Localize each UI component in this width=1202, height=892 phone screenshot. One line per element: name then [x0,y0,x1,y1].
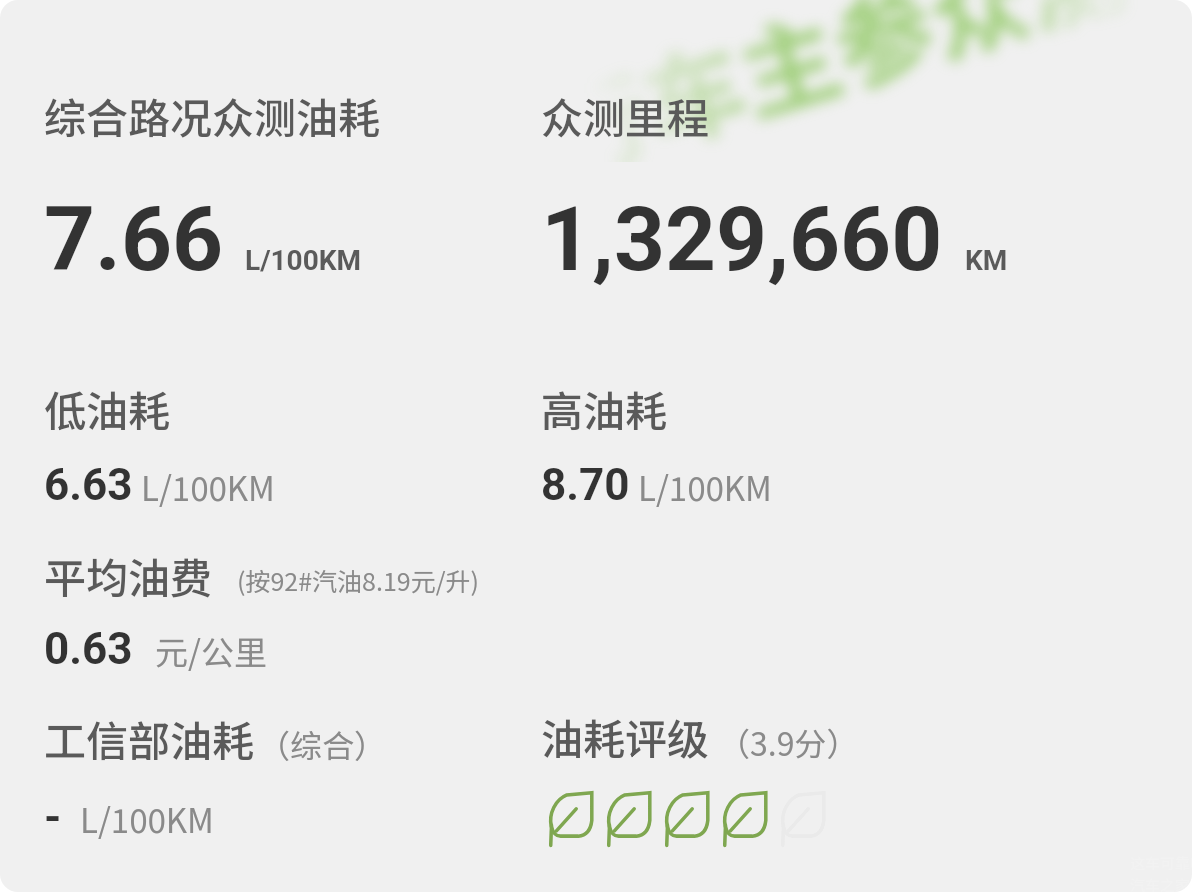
staticText: 行车主参众测 [530,0,1140,162]
staticText: 低油耗 [44,378,171,439]
other: 油耗评级 3.9 分，共 5 片叶子 [545,788,835,846]
staticText: 高油耗 [541,378,668,439]
staticText: （综合） [258,721,387,767]
button[interactable]: 高油耗 [537,370,997,510]
staticText: L/100KM [245,244,362,277]
staticText: KM [965,244,1008,277]
button[interactable]: 油耗评级 [537,698,997,850]
button[interactable]: 平均油费 [40,540,500,670]
staticText: (按92#汽油8.19元/升) [237,562,479,598]
staticText: 7.66 [44,187,223,291]
staticText: 工信部油耗 [44,708,255,769]
staticText: 综合路况众测油耗 [44,85,381,146]
staticText: 汽车之家 [1130,874,1191,892]
staticText: （3.9分） [718,719,859,765]
staticText: 8.70 [541,459,630,511]
staticText: 0.63 [44,623,133,675]
staticText: L/100KM [141,463,275,511]
staticText: L/100KM [80,795,214,843]
button[interactable]: 众测里程 [537,79,1007,279]
button[interactable]: 综合路况众测油耗 [40,79,510,279]
staticText: L/100KM [638,463,772,511]
staticText: 1,329,660 [541,187,943,291]
staticText: 平均油费 [44,545,213,606]
staticText: 元/公里 [155,627,267,675]
button[interactable]: 低油耗 [40,370,500,510]
staticText: 油耗评级 [541,706,710,767]
staticText: - [44,791,62,843]
button[interactable]: 工信部油耗 [40,700,500,850]
staticText: 众测里程 [541,85,710,146]
staticText: 6.63 [44,459,133,511]
